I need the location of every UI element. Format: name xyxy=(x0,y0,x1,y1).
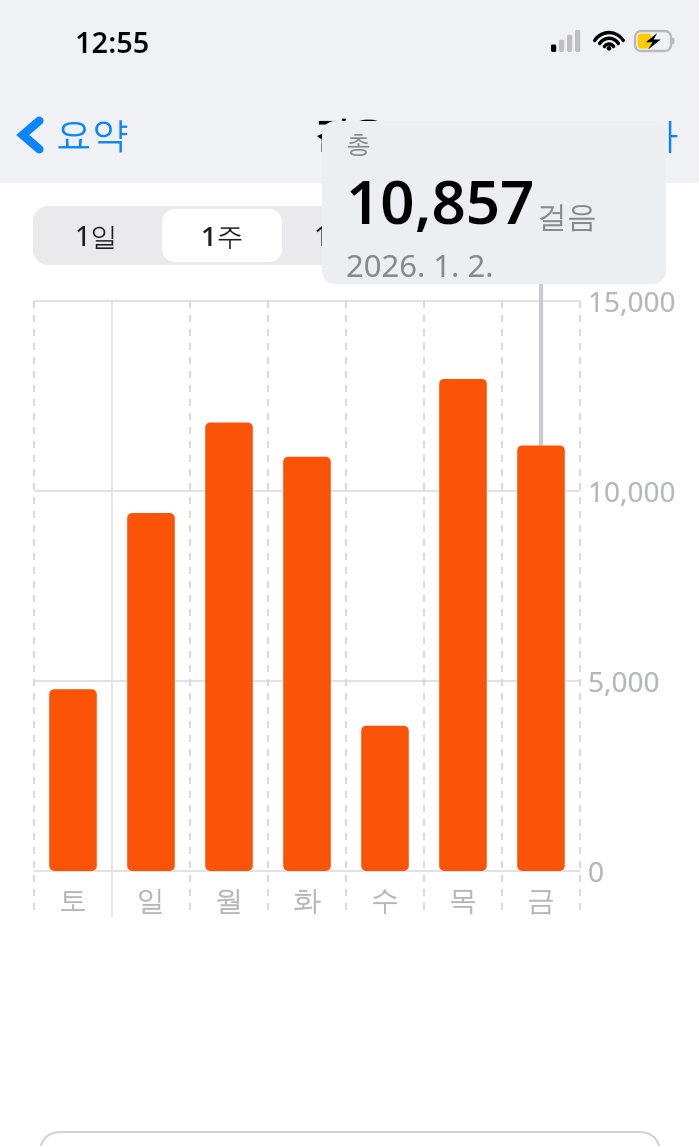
button[interactable]: 1주 xyxy=(162,209,282,262)
staticText: 목 xyxy=(449,883,477,918)
staticText: 1일 xyxy=(75,217,118,254)
button[interactable]: 1년 xyxy=(542,209,663,262)
staticText: 1개월 xyxy=(314,217,384,254)
staticText: 10,857 xyxy=(346,160,535,242)
staticText: 10,000 xyxy=(588,472,676,510)
staticText: 15,000 xyxy=(588,282,676,320)
staticText: 일 xyxy=(137,883,165,918)
staticText: 6개월 xyxy=(441,217,511,254)
button[interactable]: 요약 xyxy=(0,104,140,165)
staticText: 화 xyxy=(293,883,321,918)
staticText: 데이터 추가 xyxy=(489,110,679,159)
staticText: 월 xyxy=(215,883,243,918)
staticText: 12:55 xyxy=(75,22,150,61)
staticText: 총 xyxy=(346,129,371,160)
staticText: 수 xyxy=(371,883,399,918)
button[interactable]: 총 xyxy=(322,121,666,284)
staticText: 요약 xyxy=(56,112,128,157)
staticText: 토 xyxy=(59,883,87,918)
staticText: 1년 xyxy=(581,217,624,254)
staticText: 걸음 xyxy=(314,112,386,157)
button[interactable]: 6개월 xyxy=(415,209,536,262)
staticText: 2026. 1. 2. xyxy=(346,244,494,284)
staticText: 1주 xyxy=(201,217,244,254)
staticText: 0 xyxy=(588,852,605,890)
staticText: 금 xyxy=(527,883,555,918)
staticText: 걸음 xyxy=(537,198,597,236)
staticText: 5,000 xyxy=(588,662,660,700)
button[interactable]: 1개월 xyxy=(288,209,409,262)
button[interactable]: 데이터 추가 xyxy=(469,102,699,167)
button[interactable]: 1일 xyxy=(36,209,156,262)
